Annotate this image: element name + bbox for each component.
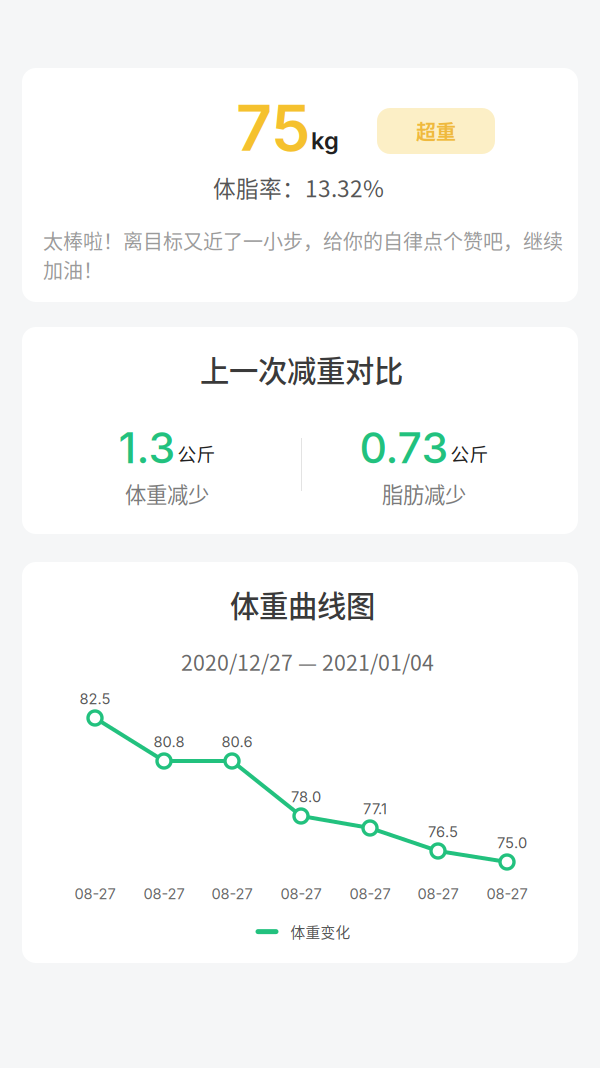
staticText: 08-27 [486,885,527,903]
staticText: 1.3 [118,422,175,474]
staticText: kg [311,126,339,155]
staticText: 公斤 [177,440,215,467]
staticText: 2020/12/27 — 2021/01/04 [181,646,434,677]
staticText: 75.0 [497,834,527,852]
staticText: 76.5 [428,823,458,841]
staticText: 体脂率：13.32% [213,171,384,204]
staticText: 08-27 [143,885,184,903]
staticText: 体重减少 [125,478,209,509]
staticText: 0.73 [359,422,448,474]
staticText: 体重变化 [290,921,350,942]
staticText: 75 [236,90,310,166]
staticText: 上一次减重对比 [200,348,403,390]
staticText: 脂肪减少 [382,478,466,509]
staticText: 80.8 [153,733,184,751]
staticText: 78.0 [291,788,321,806]
staticText: 08-27 [74,885,115,903]
staticText: 80.6 [221,733,252,751]
staticText: 08-27 [417,885,458,903]
button[interactable]: 超重 [377,108,495,154]
staticText: 82.5 [79,690,110,708]
staticText: 08-27 [211,885,252,903]
staticText: 08-27 [280,885,321,903]
staticText: 08-27 [349,885,390,903]
staticText: 体重曲线图 [230,583,375,625]
staticText: 太棒啦！离目标又近了一小步，给你的自律点个赞吧，继续加油！ [43,226,563,284]
staticText: 77.1 [363,800,387,818]
staticText: 公斤 [450,440,488,467]
staticText: 超重 [416,116,456,145]
